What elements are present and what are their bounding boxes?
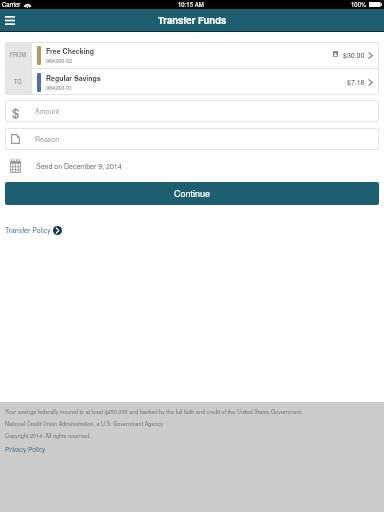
button[interactable]: Reason [5,128,379,150]
staticText: 984260-02 [46,57,73,65]
staticText: FROM [10,51,27,59]
button[interactable]: FROM [5,42,379,68]
staticText: Regular Savings [46,73,101,83]
staticText: $ [12,103,20,119]
staticText: Transfer Policy [5,225,51,235]
button[interactable]: TO [5,69,379,95]
staticText: Reason [35,134,60,144]
staticText: Transfer Funds [158,13,227,27]
button[interactable]: Send on December 9, 2014 [10,156,379,176]
staticText: Privacy Policy [5,445,46,454]
staticText: 100% [351,0,367,9]
staticText: Carrier [2,0,21,9]
button[interactable]: Privacy Policy [5,445,46,454]
staticText: Send on December 9, 2014 [36,161,122,171]
button[interactable]: Transfer Policy [5,225,62,235]
staticText: Free Checking [46,46,95,56]
staticText: 984260-01 [46,84,73,92]
staticText: $7.18 [347,77,365,87]
button[interactable]: $ [5,100,379,122]
staticText: 10:15 AM [178,0,204,9]
staticText: Amount [35,106,60,116]
button[interactable]: Continue [5,182,379,205]
staticText: Your savings federally insured to at lea… [5,408,303,416]
staticText: $30.00 [343,50,365,60]
staticText: TO [14,78,22,86]
staticText: National Credit Union Administration, a … [5,420,164,428]
staticText: Continue [174,187,211,200]
staticText: Copyright 2014. All rights reserved. [5,432,91,440]
button[interactable]: Menu [1,11,19,29]
